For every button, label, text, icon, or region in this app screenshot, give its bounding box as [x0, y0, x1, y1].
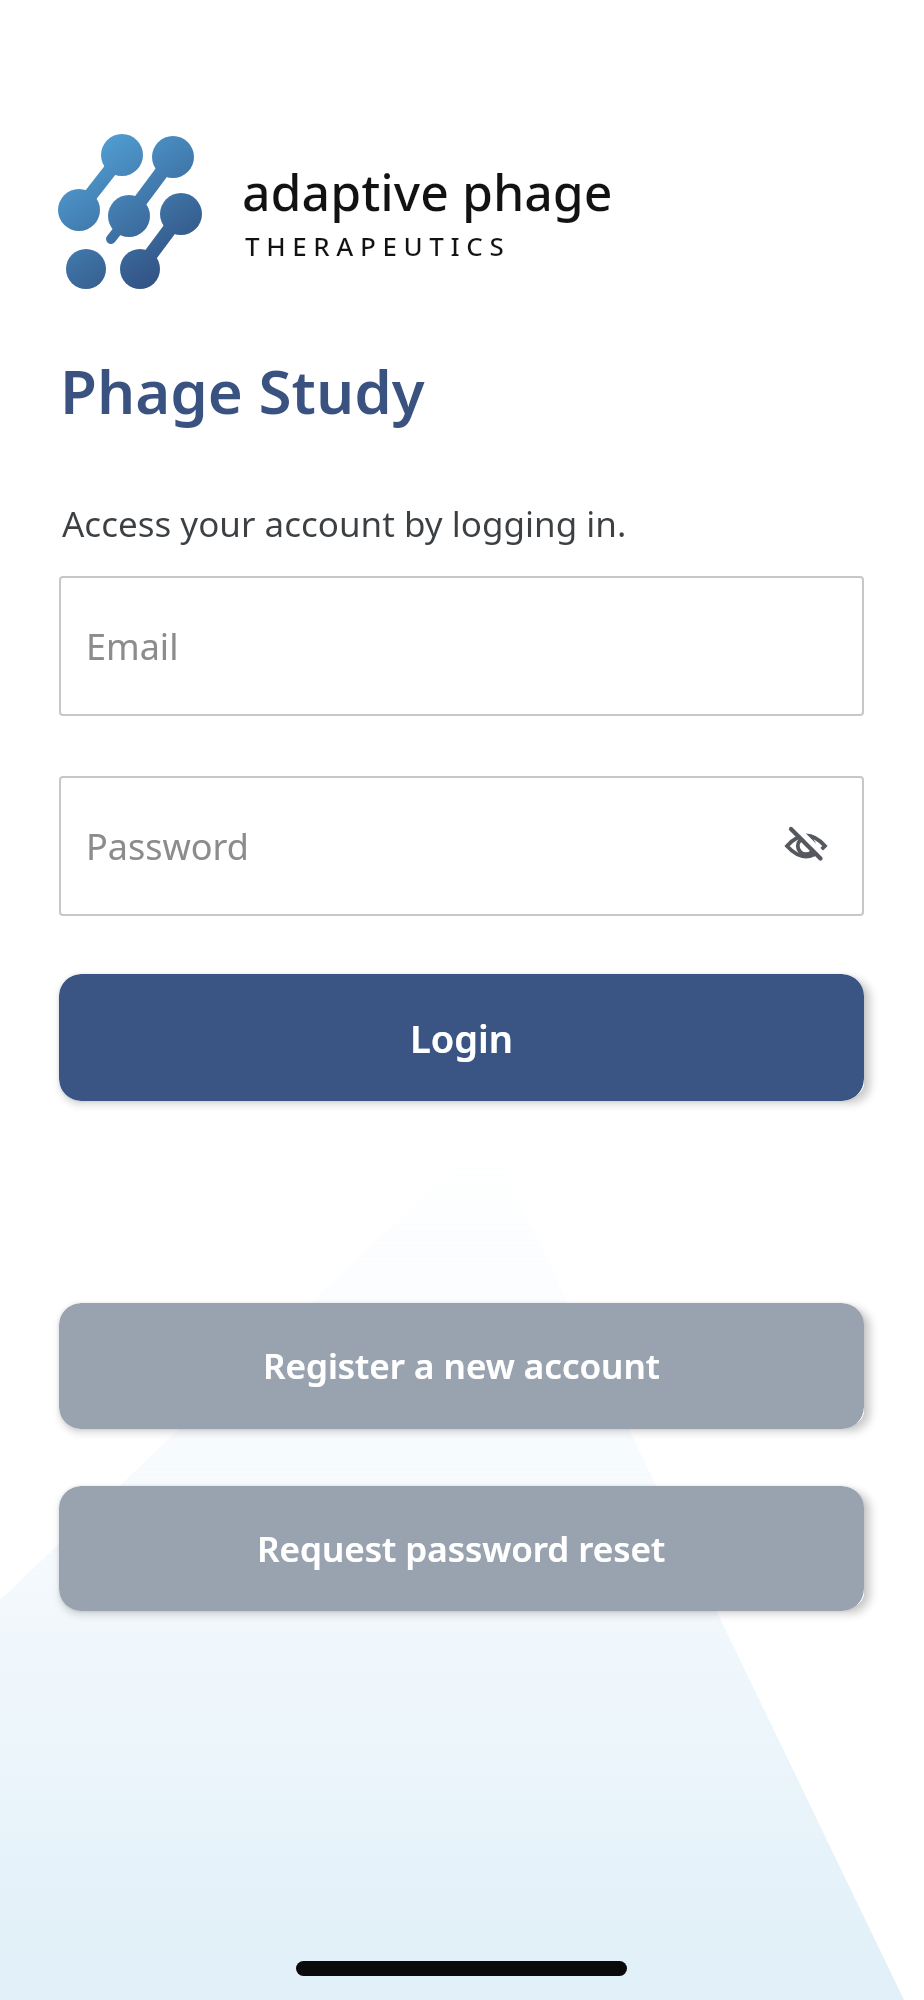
staticText: Request password reset — [257, 1525, 666, 1573]
staticText: Phage Study — [60, 350, 425, 432]
staticText: Register a new account — [263, 1342, 660, 1390]
button[interactable]: Register a new account — [59, 1303, 864, 1429]
button[interactable]: Login — [59, 974, 864, 1101]
staticText: Login — [410, 1012, 513, 1064]
button[interactable]: Password — [59, 776, 864, 916]
staticText: THERAPEUTICS — [245, 228, 511, 263]
button[interactable]: Email — [59, 576, 864, 716]
button[interactable] — [782, 822, 830, 870]
staticText: Email — [86, 622, 179, 671]
staticText: adaptive phage — [242, 158, 613, 226]
staticText: Access your account by logging in. — [62, 500, 627, 548]
staticText: Password — [86, 822, 249, 871]
button[interactable]: Request password reset — [59, 1486, 864, 1611]
